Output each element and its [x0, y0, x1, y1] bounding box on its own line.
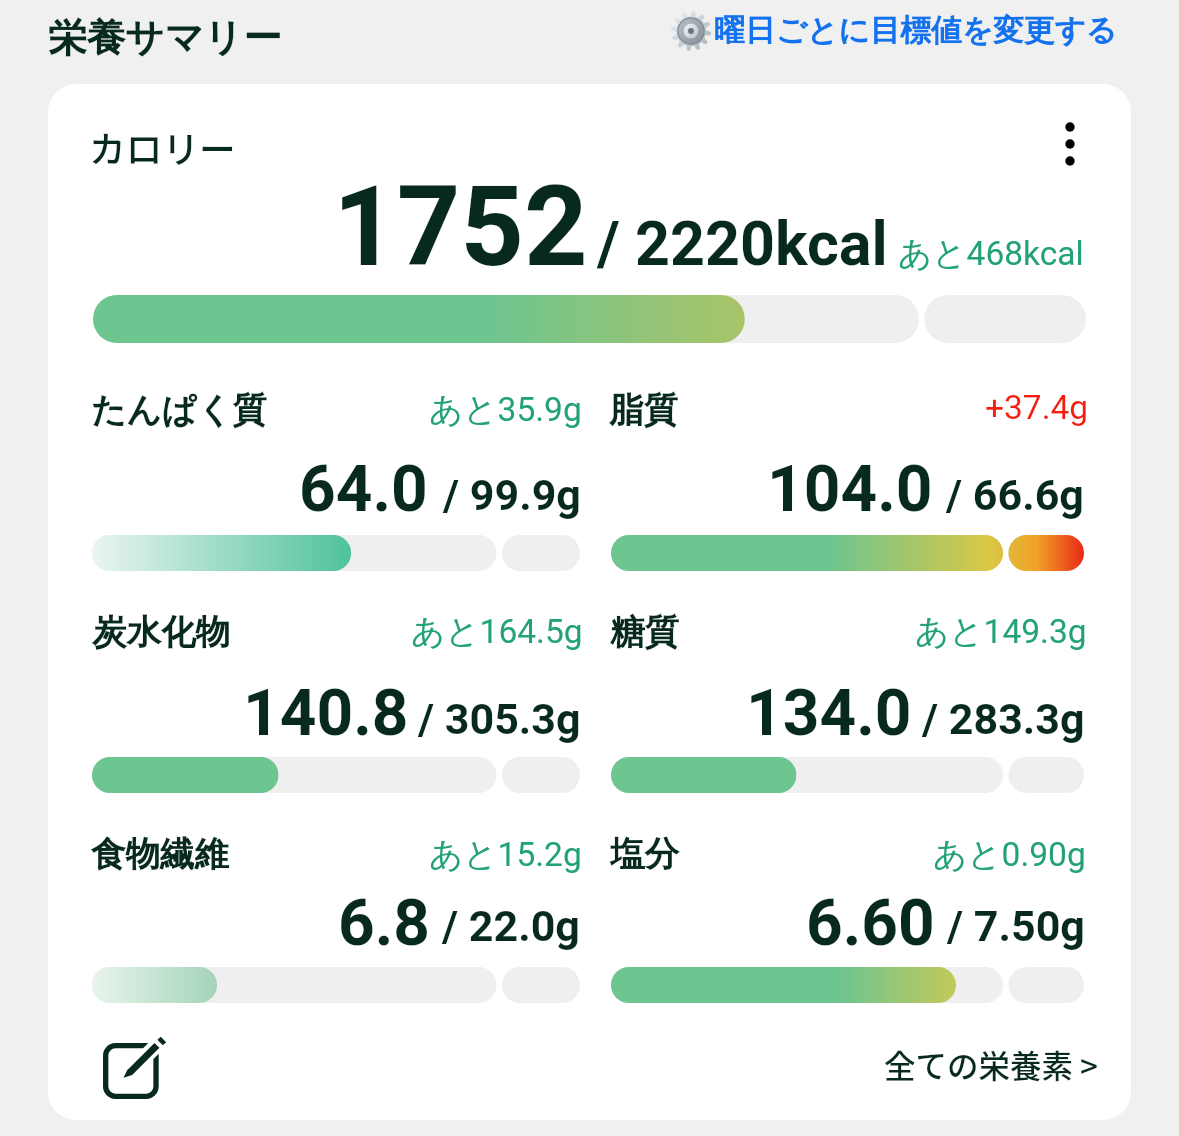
- staticText: あと164.5g: [411, 611, 583, 653]
- staticText: / 2220kcal: [597, 208, 888, 279]
- staticText: あと35.9g: [429, 389, 582, 431]
- staticText: / 66.6g: [946, 470, 1084, 520]
- staticText: 64.0: [299, 452, 428, 527]
- staticText: 曜日ごとに目標値を変更する: [714, 11, 1118, 50]
- staticText: / 7.50g: [947, 901, 1085, 951]
- staticText: 脂質: [609, 389, 678, 432]
- staticText: / 283.3g: [922, 694, 1085, 744]
- staticText: 6.8: [338, 886, 431, 961]
- staticText: カロリー: [89, 120, 236, 173]
- staticText: / 22.0g: [442, 901, 580, 951]
- staticText: あと468kcal: [898, 233, 1084, 275]
- button[interactable]: More options: [1046, 104, 1094, 184]
- button[interactable]: 栄養サマリー: [40, 8, 290, 60]
- staticText: 6.60: [806, 886, 935, 961]
- staticText: たんぱく質: [91, 389, 267, 432]
- staticText: あと0.90g: [933, 834, 1086, 876]
- button[interactable]: 曜日ごとに目標値を変更する: [660, 4, 1132, 58]
- staticText: あと15.2g: [429, 834, 582, 876]
- staticText: 栄養サマリー: [48, 14, 282, 63]
- staticText: 全ての栄養素 >: [884, 1041, 1099, 1087]
- staticText: 塩分: [610, 833, 679, 876]
- button[interactable]: 全ての栄養素 >: [870, 1036, 1110, 1096]
- staticText: 1752: [333, 162, 588, 292]
- staticText: / 305.3g: [418, 694, 581, 744]
- staticText: / 99.9g: [443, 470, 581, 520]
- staticText: +37.4g: [985, 388, 1089, 427]
- staticText: 糖質: [610, 611, 679, 654]
- staticText: 140.8: [243, 676, 409, 751]
- staticText: あと149.3g: [915, 611, 1087, 653]
- staticText: 134.0: [746, 676, 912, 751]
- button[interactable]: Edit: [103, 1040, 173, 1102]
- staticText: 炭水化物: [92, 611, 230, 654]
- staticText: 食物繊維: [91, 833, 229, 876]
- staticText: 104.0: [767, 452, 933, 527]
